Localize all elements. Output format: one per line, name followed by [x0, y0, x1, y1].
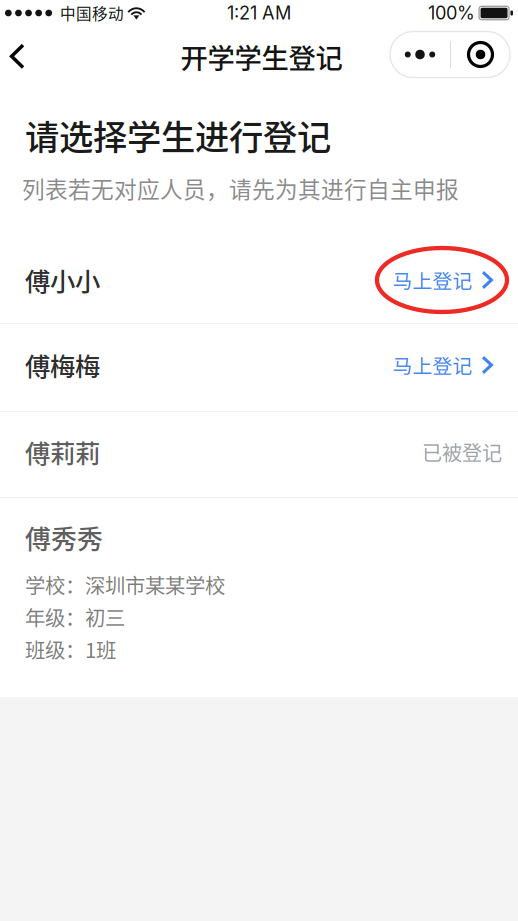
button[interactable]: 傅小小	[0, 237, 518, 323]
button[interactable]: 傅梅梅	[0, 324, 518, 411]
staticText: 已被登记	[422, 437, 502, 467]
staticText: 傅莉莉	[25, 434, 100, 470]
staticText: 马上登记	[392, 266, 472, 294]
staticText: 马上登记	[392, 351, 472, 379]
staticText: 学校：深圳市某某学校	[25, 570, 225, 599]
staticText: 请选择学生进行登记	[25, 110, 331, 160]
staticText: 傅梅梅	[25, 347, 100, 383]
staticText: 开学学生登记	[180, 37, 342, 76]
staticText: 列表若无对应人员，请先为其进行自主申报	[22, 172, 459, 204]
staticText: 100%	[428, 2, 475, 24]
button[interactable]: 更多	[390, 31, 510, 77]
staticText: 1:21 AM	[227, 2, 291, 24]
staticText: 傅小小	[25, 262, 100, 298]
staticText: 傅秀秀	[25, 519, 103, 556]
staticText: 年级：初三	[25, 602, 125, 632]
staticText: 班级：1班	[25, 634, 116, 664]
staticText: 中国移动	[60, 2, 124, 24]
button[interactable]: 返回	[0, 26, 45, 83]
